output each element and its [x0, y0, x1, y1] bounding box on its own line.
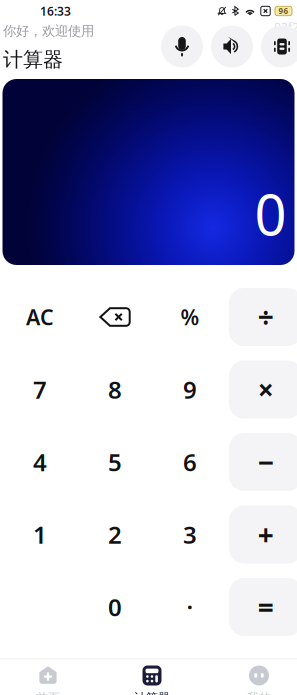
button[interactable]: Haptics: [261, 25, 297, 67]
button[interactable]: 6: [152, 433, 227, 491]
button[interactable]: Equals: [227, 578, 297, 636]
staticText: 16:33: [40, 3, 71, 19]
staticText: 03f2: [274, 19, 297, 35]
button[interactable]: 首页: [20, 658, 76, 695]
button[interactable]: ·: [152, 578, 227, 636]
button[interactable]: 2: [77, 505, 152, 563]
button[interactable]: Plus: [227, 505, 297, 563]
staticText: 7: [33, 374, 47, 405]
staticText: 计算器: [3, 47, 63, 72]
staticText: =: [258, 588, 274, 626]
button[interactable]: 8: [77, 360, 152, 418]
staticText: 0: [254, 177, 286, 251]
staticText: 4: [33, 446, 47, 478]
staticText: 你好，欢迎使用: [3, 23, 94, 39]
button[interactable]: 1: [2, 505, 77, 563]
staticText: +: [258, 516, 274, 553]
button[interactable]: 我的: [231, 658, 287, 695]
button[interactable]: 4: [2, 433, 77, 491]
staticText: AC: [26, 303, 54, 331]
button[interactable]: 7: [2, 360, 77, 418]
staticText: 计算器: [134, 690, 170, 695]
staticText: 2: [108, 519, 122, 550]
staticText: ×: [258, 371, 274, 408]
button[interactable]: 0: [77, 578, 152, 636]
button[interactable]: Divide: [227, 288, 297, 346]
staticText: 我的: [247, 690, 271, 695]
button[interactable]: 9: [152, 360, 227, 418]
staticText: 首页: [36, 690, 60, 695]
button[interactable]: %: [152, 288, 227, 346]
button[interactable]: AC: [2, 288, 77, 346]
button[interactable]: Minus: [227, 433, 297, 491]
staticText: 6: [183, 446, 197, 478]
staticText: 8: [108, 374, 122, 405]
staticText: 96: [278, 6, 288, 16]
staticText: ·: [186, 591, 193, 623]
button[interactable]: 3: [152, 505, 227, 563]
button[interactable]: 5: [77, 433, 152, 491]
button[interactable]: Sound: [211, 25, 253, 67]
staticText: %: [180, 303, 199, 331]
staticText: ÷: [258, 298, 274, 336]
staticText: 1: [33, 519, 47, 550]
staticText: −: [258, 443, 274, 481]
button[interactable]: Multiply: [227, 360, 297, 418]
staticText: 0: [108, 591, 122, 623]
staticText: 3: [183, 519, 197, 550]
button[interactable]: Delete: [77, 288, 152, 346]
button[interactable]: 计算器: [124, 658, 180, 695]
staticText: 9: [183, 374, 197, 405]
button[interactable]: Voice input: [161, 25, 203, 67]
staticText: 5: [108, 446, 122, 478]
